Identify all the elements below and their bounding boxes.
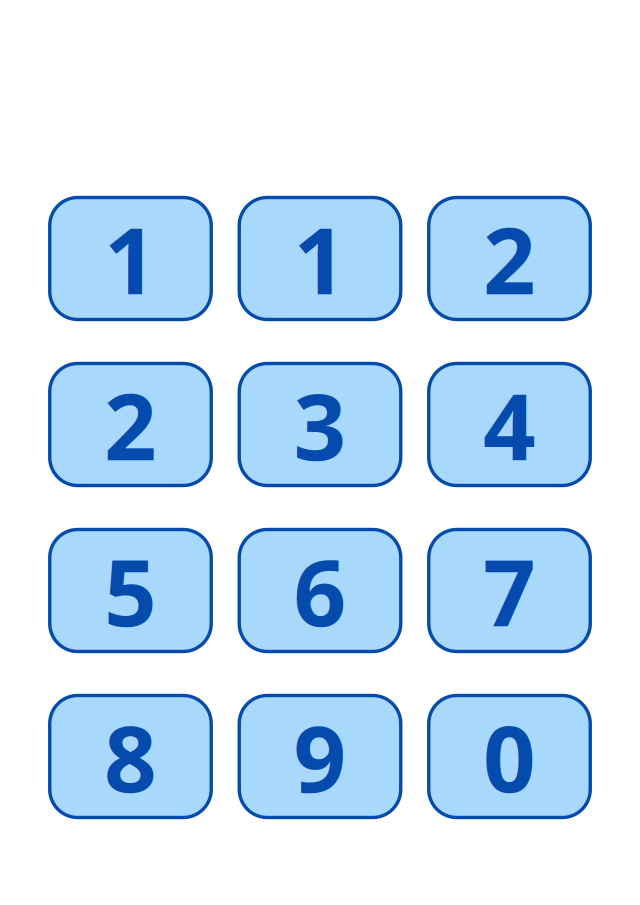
staticText: 9: [293, 695, 346, 818]
staticText: 7: [483, 529, 536, 652]
button[interactable]: 2: [50, 363, 211, 485]
button[interactable]: 6: [239, 529, 401, 651]
button[interactable]: 0: [429, 695, 590, 817]
staticText: 1: [293, 197, 346, 320]
button[interactable]: 7: [429, 529, 590, 651]
staticText: 2: [104, 363, 157, 486]
staticText: 2: [483, 197, 536, 320]
staticText: 3: [293, 363, 346, 486]
staticText: 1: [104, 197, 157, 320]
button[interactable]: 2: [429, 197, 590, 319]
staticText: 6: [293, 529, 346, 652]
staticText: 4: [483, 363, 536, 486]
staticText: 5: [104, 529, 157, 652]
button[interactable]: 1: [50, 197, 211, 319]
button[interactable]: 8: [50, 695, 211, 817]
button[interactable]: 5: [50, 529, 211, 651]
staticText: 8: [104, 695, 157, 818]
button[interactable]: 4: [429, 363, 590, 485]
button[interactable]: 1: [239, 197, 401, 319]
button[interactable]: 3: [239, 363, 401, 485]
button[interactable]: 9: [239, 695, 401, 817]
staticText: 0: [483, 695, 536, 818]
